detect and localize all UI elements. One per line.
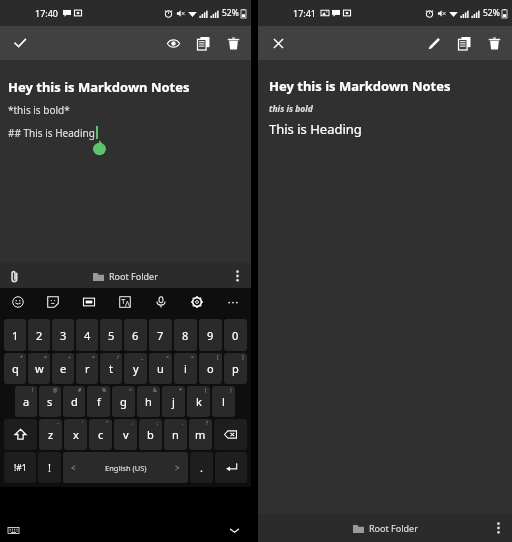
button[interactable]: ^ <box>112 386 135 417</box>
button[interactable]: / <box>100 353 122 384</box>
button[interactable]: 1 <box>4 319 26 351</box>
button[interactable]: Backspace <box>214 419 247 450</box>
button[interactable]: Attach <box>4 266 24 286</box>
button[interactable]: ! <box>38 452 61 483</box>
button[interactable]: _ <box>124 353 147 384</box>
button[interactable]: × <box>28 353 50 384</box>
button[interactable]: > <box>174 353 197 384</box>
staticText: a <box>23 394 30 409</box>
staticText: e <box>60 361 67 376</box>
staticText: ! <box>48 460 51 475</box>
staticText: > <box>175 462 180 473</box>
staticText: % <box>102 387 107 394</box>
staticText: ] <box>242 354 244 361</box>
staticText: k <box>196 394 202 409</box>
staticText: # <box>78 387 82 394</box>
button[interactable]: Enter <box>215 452 247 483</box>
button[interactable]: Notes list <box>190 30 216 56</box>
staticText: 17:40 <box>35 7 59 19</box>
staticText: ## This is Heading <box>8 126 95 140</box>
button[interactable]: , <box>164 419 187 450</box>
button[interactable]: 2 <box>28 319 50 351</box>
button[interactable]: 3 <box>52 319 74 351</box>
button[interactable]: < <box>149 353 172 384</box>
staticText: g <box>120 394 127 409</box>
button[interactable]: ÷ <box>52 353 74 384</box>
button[interactable]: @ <box>39 386 61 417</box>
button[interactable]: ? <box>189 419 212 450</box>
button[interactable]: % <box>87 386 110 417</box>
staticText: 2 <box>36 328 43 343</box>
button[interactable]: Hide keyboard <box>225 521 243 539</box>
button[interactable]: 7 <box>149 319 172 351</box>
button[interactable]: Emoji <box>0 288 35 315</box>
button[interactable]: Edit <box>421 30 447 56</box>
button[interactable]: Close <box>264 29 292 57</box>
staticText: u <box>157 361 164 376</box>
button[interactable]: 8 <box>174 319 197 351</box>
staticText: 6 <box>132 328 139 343</box>
button[interactable]: 0 <box>224 319 247 351</box>
button[interactable]: ! <box>15 386 37 417</box>
button[interactable]: Translate <box>107 288 143 315</box>
staticText: 0 <box>232 328 239 343</box>
staticText: < <box>166 354 169 361</box>
staticText: & <box>153 387 157 394</box>
button[interactable]: Delete <box>220 30 246 56</box>
staticText: r <box>85 361 90 376</box>
button[interactable]: More options <box>488 518 508 538</box>
button[interactable]: < <box>63 452 188 483</box>
staticText: - <box>57 420 59 427</box>
button[interactable]: ; <box>139 419 162 450</box>
button[interactable]: More <box>215 288 251 315</box>
button[interactable]: ] <box>224 353 247 384</box>
button[interactable]: = <box>76 353 98 384</box>
staticText: b <box>147 427 154 442</box>
button[interactable]: 6 <box>124 319 147 351</box>
staticText: / <box>117 354 119 361</box>
button[interactable]: More options <box>227 266 247 286</box>
staticText: > <box>191 354 194 361</box>
button[interactable]: Settings <box>179 288 215 315</box>
button[interactable]: * <box>162 386 185 417</box>
button[interactable]: !#1 <box>4 452 36 483</box>
button[interactable]: ( <box>187 386 210 417</box>
button[interactable]: # <box>63 386 85 417</box>
button[interactable]: ) <box>212 386 235 417</box>
button[interactable]: Root Folder <box>93 270 158 282</box>
staticText: !#1 <box>14 462 27 474</box>
button[interactable]: & <box>137 386 160 417</box>
button[interactable]: 4 <box>76 319 98 351</box>
staticText: < <box>71 462 76 473</box>
button[interactable]: Stickers <box>35 288 71 315</box>
button[interactable]: Save <box>6 29 34 57</box>
button[interactable]: Voice input <box>143 288 179 315</box>
button[interactable]: [ <box>199 353 222 384</box>
staticText: j <box>172 394 175 409</box>
button[interactable]: Keyboard <box>4 521 22 539</box>
button[interactable]: - <box>39 419 62 450</box>
staticText: 4 <box>84 328 91 343</box>
button[interactable]: GIF <box>71 288 107 315</box>
button[interactable]: ' <box>64 419 87 450</box>
staticText: m <box>195 427 206 442</box>
staticText: h <box>145 394 152 409</box>
button[interactable]: 5 <box>100 319 122 351</box>
staticText: " <box>106 420 109 427</box>
button[interactable]: Delete <box>481 30 507 56</box>
button[interactable]: Shift <box>4 419 37 450</box>
staticText: ^ <box>129 387 132 394</box>
button[interactable]: + <box>4 353 26 384</box>
button[interactable]: Root Folder <box>353 522 418 534</box>
button[interactable]: Preview <box>160 30 186 56</box>
button[interactable]: " <box>89 419 112 450</box>
button[interactable]: . <box>190 452 213 483</box>
staticText: p <box>232 361 239 376</box>
staticText: @ <box>53 387 58 394</box>
button[interactable]: Notes list <box>451 30 477 56</box>
button[interactable]: : <box>114 419 137 450</box>
staticText: Hey this is Markdown Notes <box>269 77 451 95</box>
button[interactable]: 9 <box>199 319 222 351</box>
staticText: l <box>222 394 225 409</box>
staticText: : <box>132 420 134 427</box>
